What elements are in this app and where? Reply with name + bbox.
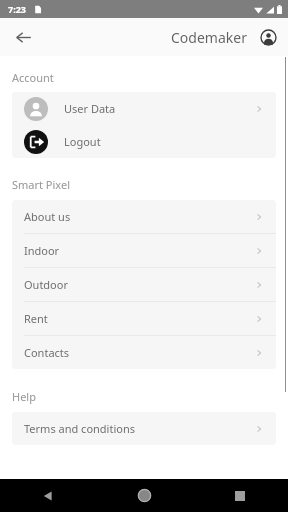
button[interactable]: User Data — [12, 92, 276, 125]
button[interactable]: Outdoor — [12, 268, 276, 301]
staticText: Terms and conditions — [24, 421, 135, 436]
button[interactable]: Logout — [12, 125, 276, 158]
staticText: 7:23 — [8, 3, 26, 15]
staticText: Codemaker — [171, 28, 247, 47]
staticText: Contacts — [24, 345, 70, 360]
staticText: Help — [12, 389, 36, 404]
button[interactable]: Back — [0, 479, 96, 512]
button[interactable]: About us — [12, 200, 276, 233]
button[interactable]: Home — [96, 479, 192, 512]
button[interactable]: Terms and conditions — [12, 412, 276, 445]
button[interactable]: Contacts — [12, 336, 276, 369]
button[interactable]: Rent — [12, 302, 276, 335]
staticText: Account — [12, 70, 54, 85]
staticText: User Data — [64, 101, 116, 116]
staticText: About us — [24, 209, 71, 224]
button[interactable]: Account — [256, 25, 280, 49]
staticText: Smart Pixel — [12, 177, 71, 192]
staticText: Logout — [64, 134, 101, 149]
button[interactable]: Recents — [192, 479, 288, 512]
staticText: Rent — [24, 311, 48, 326]
staticText: Outdoor — [24, 277, 68, 292]
staticText: Indoor — [24, 243, 60, 258]
button[interactable]: Indoor — [12, 234, 276, 267]
button[interactable]: Back — [8, 22, 38, 52]
